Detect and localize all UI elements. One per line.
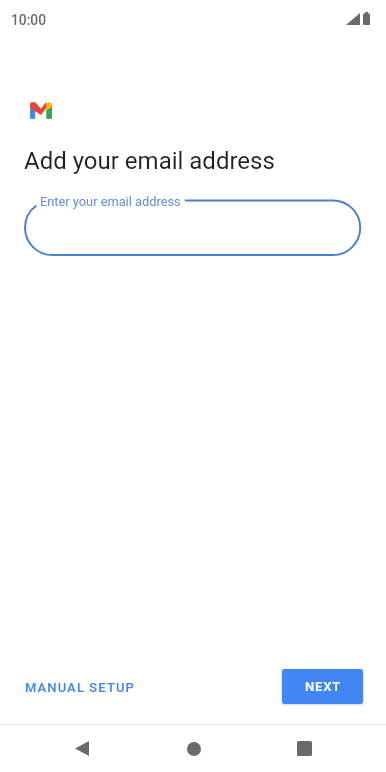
button[interactable]: Home	[170, 725, 217, 772]
staticText: 10:00	[11, 12, 47, 28]
button[interactable]: Recent apps	[281, 725, 328, 772]
button[interactable]: Back	[58, 725, 105, 772]
staticText: Enter your email address	[40, 194, 181, 209]
staticText: MANUAL SETUP	[25, 680, 135, 695]
button[interactable]: NEXT	[282, 669, 363, 704]
button[interactable]: Enter your email address	[24, 191, 362, 256]
button[interactable]: MANUAL SETUP	[16, 669, 144, 706]
staticText: NEXT	[305, 679, 341, 694]
staticText: Add your email address	[24, 147, 275, 175]
